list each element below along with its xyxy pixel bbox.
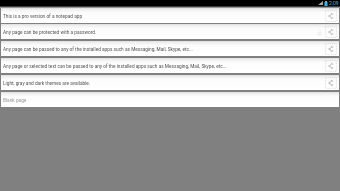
button[interactable]: Move note: [324, 42, 337, 55]
button[interactable]: This is a pro version of a notepad app: [1, 8, 339, 23]
button[interactable]: Any page can be passed to any of the ins…: [1, 41, 339, 56]
button[interactable]: Any page or selected text can be passed …: [1, 58, 339, 73]
staticText: Blank page: [3, 98, 339, 104]
button[interactable]: Move note: [324, 59, 337, 72]
staticText: Any page or selected text can be passed …: [3, 64, 324, 70]
button[interactable]: Any page can be protected with a passwor…: [1, 24, 339, 39]
staticText: Light, gray and dark themes are availabl…: [3, 81, 324, 87]
staticText: Any page can be protected with a passwor…: [3, 30, 317, 36]
button[interactable]: Light, gray and dark themes are availabl…: [1, 75, 339, 90]
button[interactable]: Blank page: [1, 92, 339, 107]
button[interactable]: Move note: [324, 76, 337, 89]
button[interactable]: Move note: [324, 9, 337, 22]
staticText: This is a pro version of a notepad app: [3, 14, 324, 20]
staticText: 2:09: [329, 0, 339, 6]
button[interactable]: Move note: [324, 25, 337, 38]
staticText: Any page can be passed to any of the ins…: [3, 47, 324, 53]
